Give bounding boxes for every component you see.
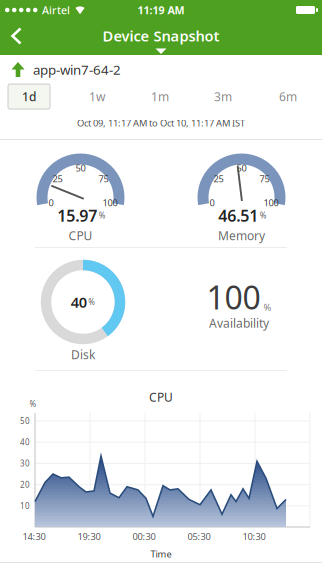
staticText: 11:19 AM: [137, 3, 184, 17]
staticText: Airtel: [42, 3, 70, 17]
staticText: Oct 09, 11:17 AM to Oct 10, 11:17 AM IST: [77, 117, 245, 129]
staticText: 50: [236, 162, 246, 174]
staticText: %: [88, 297, 95, 307]
staticText: 1d: [22, 88, 36, 104]
staticText: app-win7-64-2: [33, 61, 121, 78]
button[interactable]: 1d: [8, 84, 50, 109]
staticText: 19:30: [77, 530, 100, 543]
staticText: 100: [206, 276, 260, 318]
button[interactable]: 3m: [202, 84, 244, 109]
staticText: Memory: [218, 227, 265, 243]
button[interactable]: Device Snapshot menu: [102, 26, 219, 54]
staticText: %: [263, 301, 271, 313]
staticText: Time: [150, 548, 171, 560]
staticText: CPU: [149, 389, 173, 405]
button[interactable]: 1m: [139, 84, 181, 109]
staticText: 14:30: [22, 530, 45, 543]
staticText: 50: [75, 162, 85, 174]
staticText: 05:30: [187, 530, 210, 543]
staticText: %: [99, 210, 106, 221]
staticText: 1m: [151, 88, 169, 104]
staticText: 40: [20, 437, 30, 447]
staticText: 30: [20, 458, 30, 469]
staticText: 6m: [279, 88, 297, 104]
staticText: 46.51: [218, 205, 258, 226]
staticText: 25: [52, 172, 62, 185]
button[interactable]: Back: [10, 26, 23, 45]
staticText: 20: [20, 479, 30, 490]
staticText: 10:30: [242, 530, 265, 543]
staticText: %: [260, 210, 267, 221]
staticText: Availability: [209, 315, 269, 331]
button[interactable]: 1w: [76, 84, 118, 109]
staticText: 10: [20, 500, 30, 511]
staticText: 15.97: [57, 205, 97, 226]
button[interactable]: 6m: [267, 84, 309, 109]
staticText: %: [29, 399, 36, 409]
staticText: 40: [71, 292, 87, 312]
button[interactable]: app-win7-64-2: [0, 55, 322, 84]
staticText: 00:30: [132, 530, 155, 543]
staticText: CPU: [68, 227, 92, 243]
staticText: 50: [20, 416, 30, 426]
staticText: 100: [263, 196, 278, 209]
staticText: Device Snapshot: [102, 26, 219, 45]
staticText: 100: [102, 196, 117, 209]
staticText: 0: [48, 196, 53, 209]
staticText: 75: [259, 172, 269, 185]
staticText: 25: [213, 172, 223, 185]
staticText: 75: [98, 172, 108, 185]
staticText: 0: [209, 196, 214, 209]
staticText: 3m: [214, 88, 232, 104]
staticText: Disk: [71, 346, 95, 362]
staticText: 1w: [89, 88, 105, 104]
